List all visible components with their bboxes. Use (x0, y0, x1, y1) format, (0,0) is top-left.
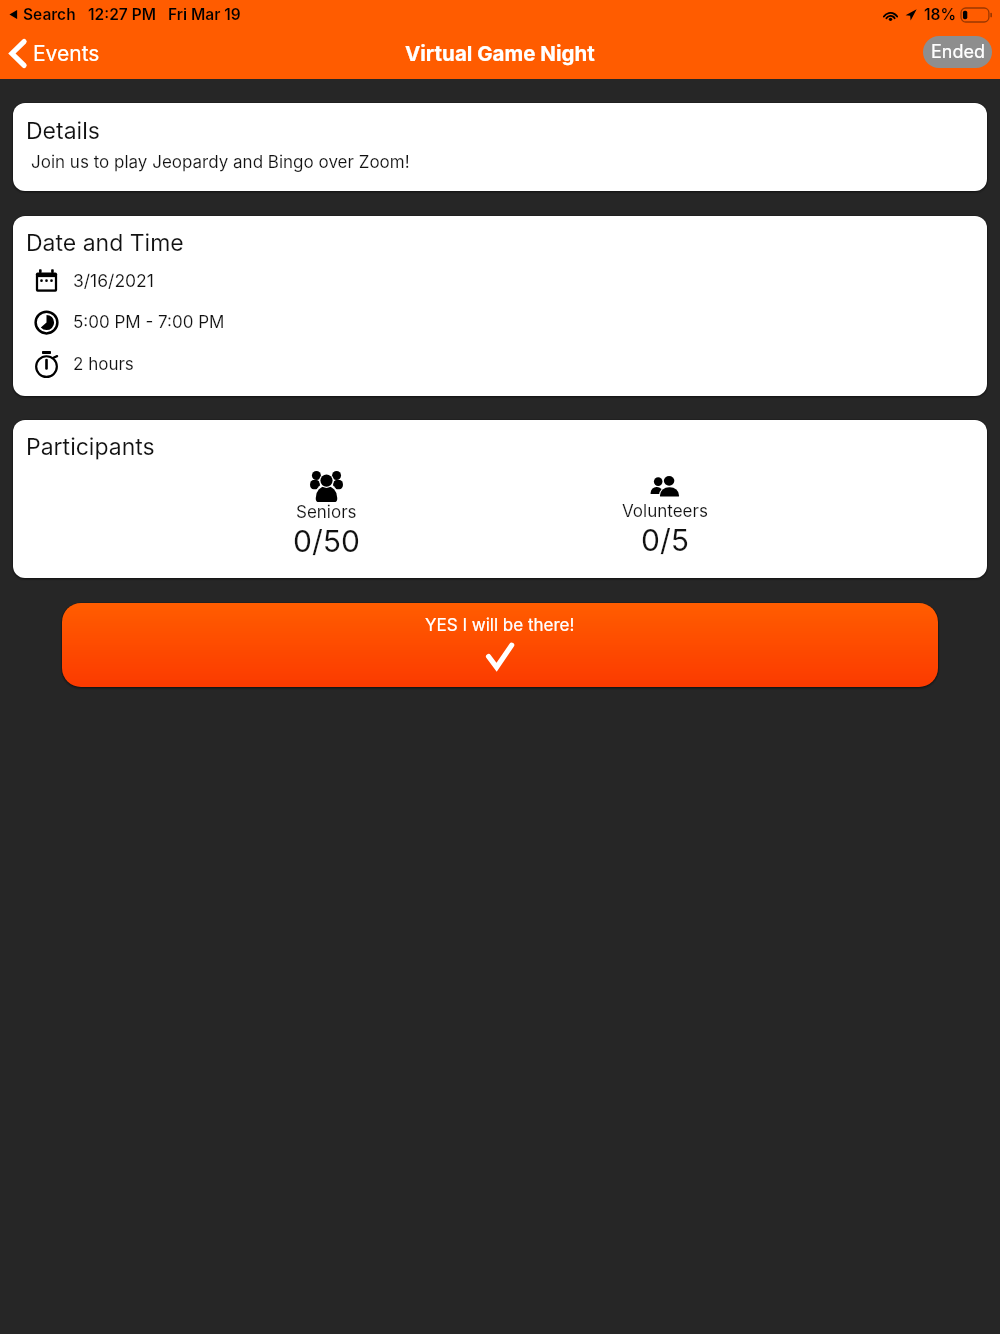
staticText: 18% (924, 5, 957, 24)
button[interactable]: Date and Time (13, 216, 987, 396)
staticText: Volunteers (622, 501, 708, 522)
staticText: Seniors (296, 502, 357, 523)
staticText: 0/5 (641, 522, 689, 558)
staticText: Fri Mar 19 (168, 5, 241, 24)
button[interactable]: Seniors (293, 471, 360, 559)
button[interactable]: Details (13, 103, 987, 191)
staticText: Details (26, 117, 100, 145)
staticText: 5:00 PM - 7:00 PM (73, 312, 225, 333)
staticText: YES I will be there! (425, 615, 575, 636)
staticText: Events (33, 41, 100, 66)
staticText: Join us to play Jeopardy and Bingo over … (31, 152, 410, 173)
button[interactable]: Volunteers (622, 471, 708, 558)
button[interactable]: Ended (923, 36, 992, 68)
staticText: 12:27 PM (88, 5, 156, 24)
staticText: Virtual Game Night (405, 41, 595, 66)
staticText: Search (23, 5, 76, 24)
button[interactable]: Participants (13, 420, 987, 578)
staticText: 3/16/2021 (73, 270, 154, 291)
staticText: 0/50 (293, 523, 360, 559)
staticText: 2 hours (73, 354, 134, 375)
button[interactable]: YES I will be there! (62, 603, 938, 687)
staticText: Date and Time (26, 229, 184, 257)
button[interactable]: Back to Events (0, 34, 112, 73)
staticText: Ended (931, 41, 985, 63)
staticText: Participants (26, 433, 155, 461)
